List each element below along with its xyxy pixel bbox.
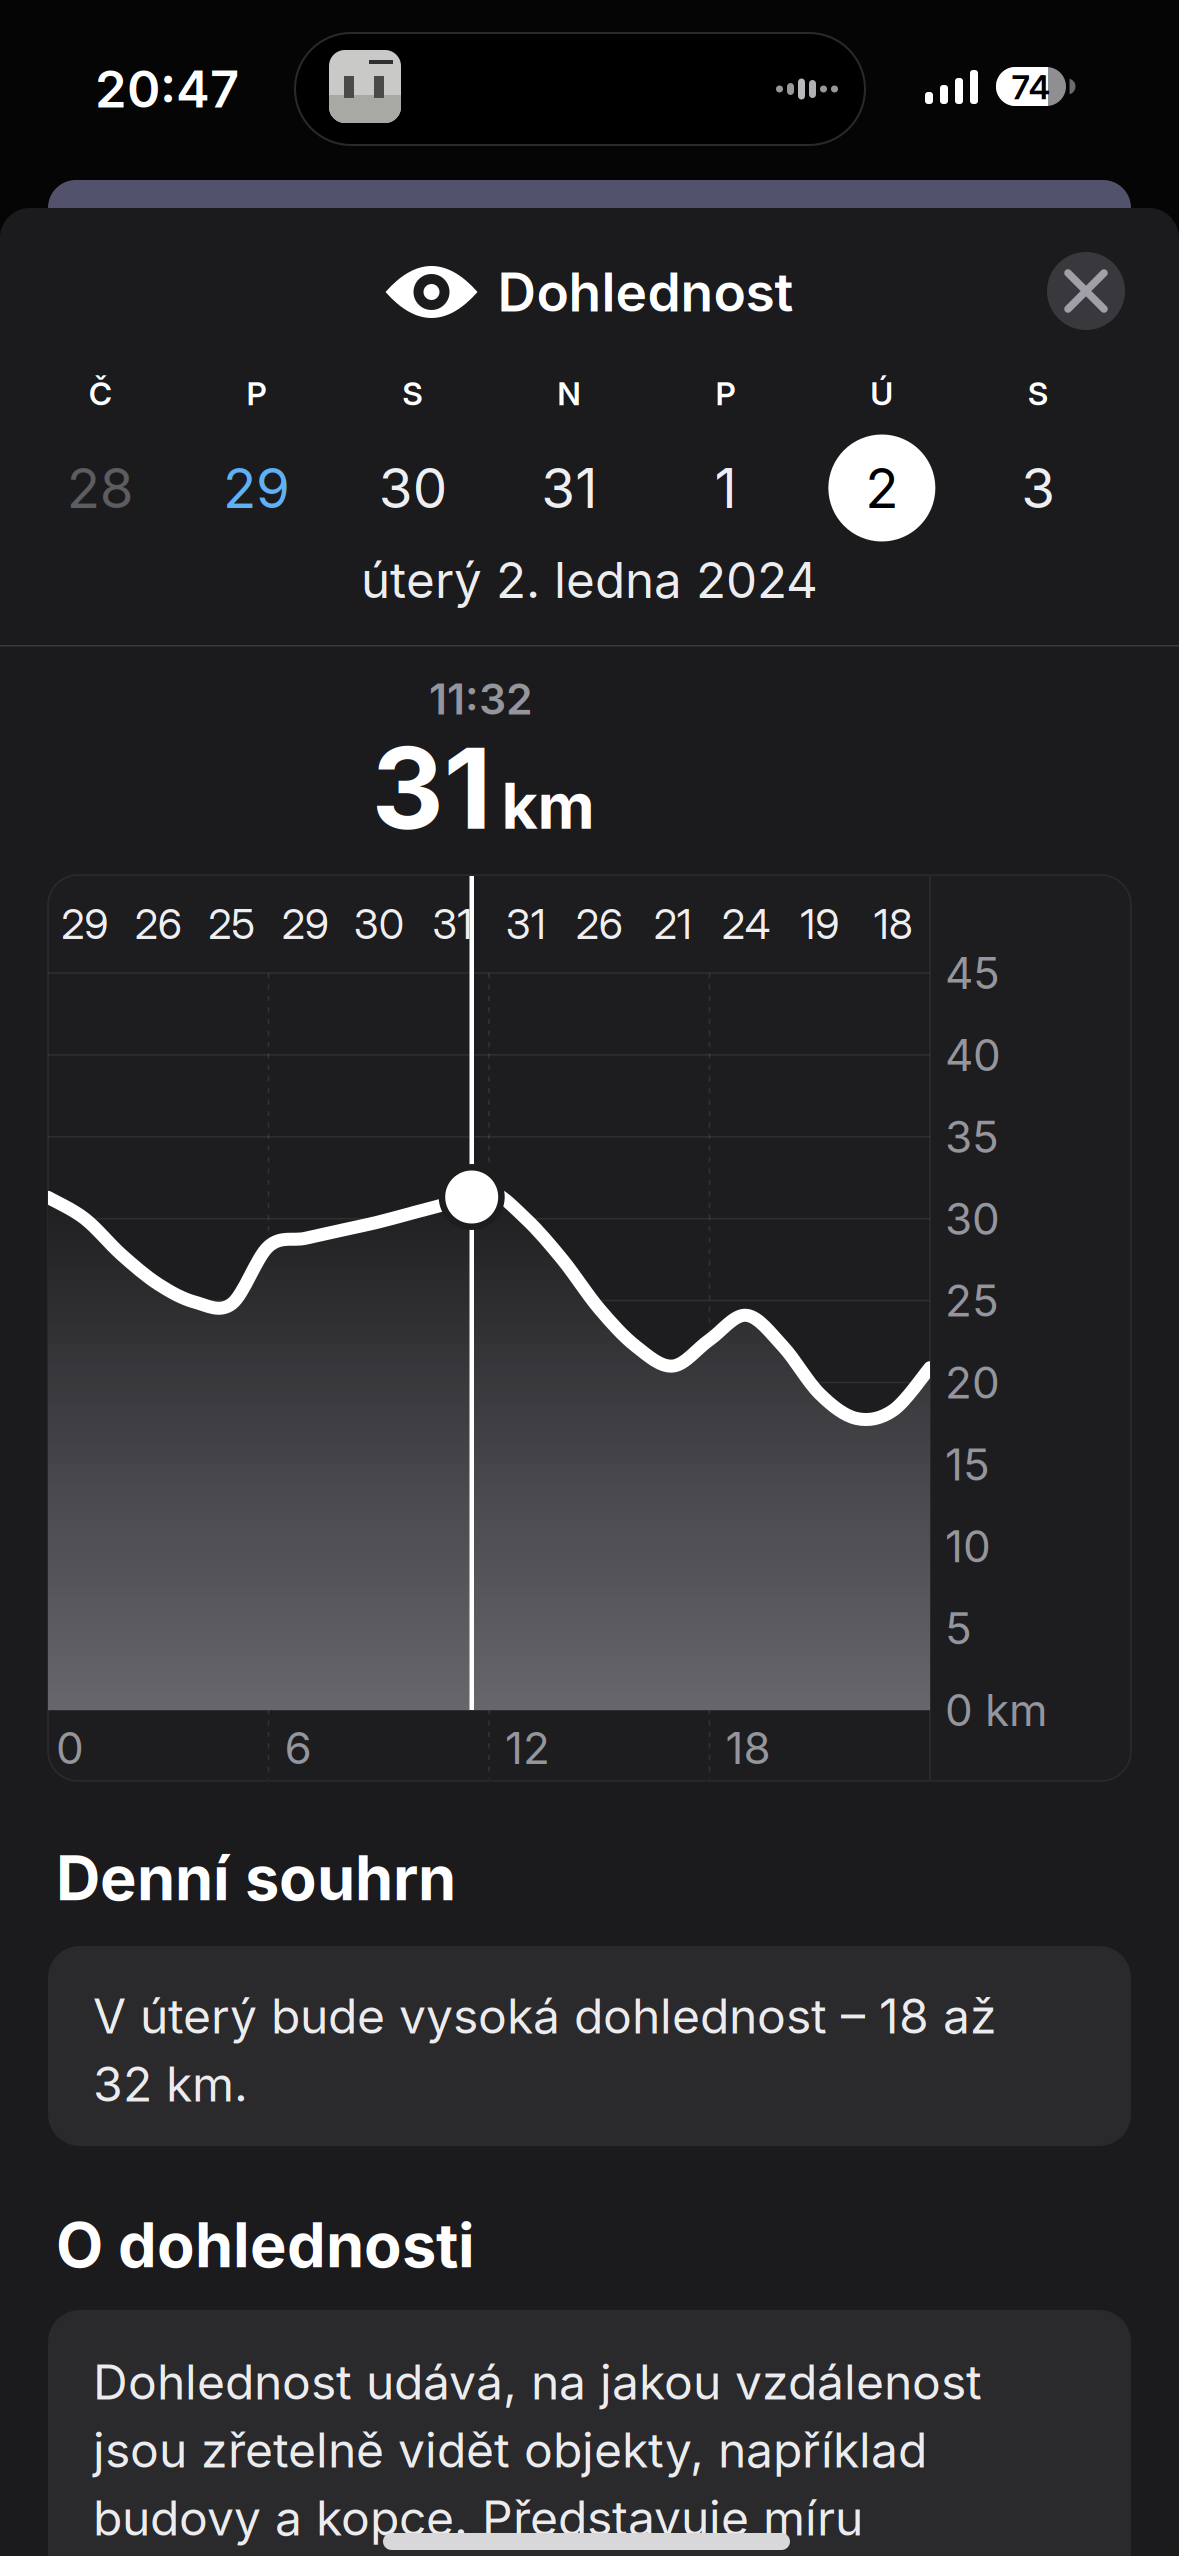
staticText: Dohlednost udává, na jakou vzdálenost <box>93 2354 982 2410</box>
staticText: 74 <box>1011 67 1050 107</box>
staticText: km <box>501 769 594 843</box>
staticText: O dohlednosti <box>56 2209 475 2281</box>
staticText: 1 <box>714 456 736 520</box>
staticText: 6 <box>284 1722 311 1774</box>
staticText: 0 km <box>945 1684 1048 1736</box>
staticText: 29 <box>61 900 108 948</box>
staticText: 25 <box>945 1275 999 1326</box>
staticText: budovy a kopce. Představuje míru <box>93 2490 863 2546</box>
staticText: 31 <box>371 722 491 854</box>
staticText: Č <box>89 375 112 412</box>
staticText: 30 <box>354 900 404 948</box>
staticText: 35 <box>945 1111 999 1163</box>
staticText: 29 <box>223 456 290 520</box>
button[interactable]: 30 <box>343 374 483 534</box>
staticText: P <box>246 375 266 412</box>
staticText: 30 <box>379 456 447 520</box>
staticText: 26 <box>135 900 182 948</box>
staticText: 11:32 <box>429 674 533 724</box>
button[interactable]: 1 <box>655 374 795 534</box>
staticText: 26 <box>576 900 623 948</box>
button[interactable]: 31 <box>499 374 639 534</box>
staticText: 5 <box>945 1602 972 1654</box>
staticText: 10 <box>945 1520 991 1572</box>
staticText: 25 <box>208 900 255 948</box>
staticText: 40 <box>945 1029 1001 1081</box>
staticText: 29 <box>282 900 329 948</box>
staticText: 31 <box>506 900 546 948</box>
staticText: 30 <box>945 1193 1000 1245</box>
staticText: úterý 2. ledna 2024 <box>361 551 818 609</box>
button[interactable]: Zavřít <box>1047 252 1125 330</box>
staticText: 0 <box>56 1722 84 1774</box>
staticText: S <box>1028 375 1049 412</box>
staticText: jsou zřetelně vidět objekty, například <box>93 2422 927 2478</box>
staticText: Ú <box>870 375 893 412</box>
staticText: 3 <box>1021 456 1055 520</box>
staticText: 31 <box>432 900 472 948</box>
staticText: 18 <box>874 900 913 948</box>
staticText: 24 <box>722 900 771 948</box>
staticText: N <box>557 375 581 412</box>
staticText: 15 <box>945 1438 990 1490</box>
button[interactable]: 2 <box>812 374 952 534</box>
staticText: Dohlednost <box>497 260 793 323</box>
staticText: 18 <box>725 1722 770 1774</box>
staticText: 31 <box>541 456 597 520</box>
staticText: S <box>402 375 423 412</box>
button[interactable]: 29 <box>186 374 326 534</box>
staticText: 20:47 <box>95 59 239 119</box>
staticText: V úterý bude vysoká dohlednost – 18 až <box>93 1988 997 2044</box>
staticText: 45 <box>945 947 1000 999</box>
staticText: 19 <box>800 900 839 948</box>
button[interactable]: 3 <box>968 374 1108 534</box>
staticText: 2 <box>865 456 898 520</box>
staticText: P <box>715 375 735 412</box>
staticText: 28 <box>67 456 134 520</box>
button[interactable]: 28 <box>30 374 170 534</box>
staticText: Denní souhrn <box>56 1842 456 1914</box>
staticText: 32 km. <box>93 2056 248 2112</box>
staticText: 20 <box>945 1356 1000 1408</box>
staticText: 12 <box>505 1722 550 1774</box>
staticText: 21 <box>654 900 692 948</box>
